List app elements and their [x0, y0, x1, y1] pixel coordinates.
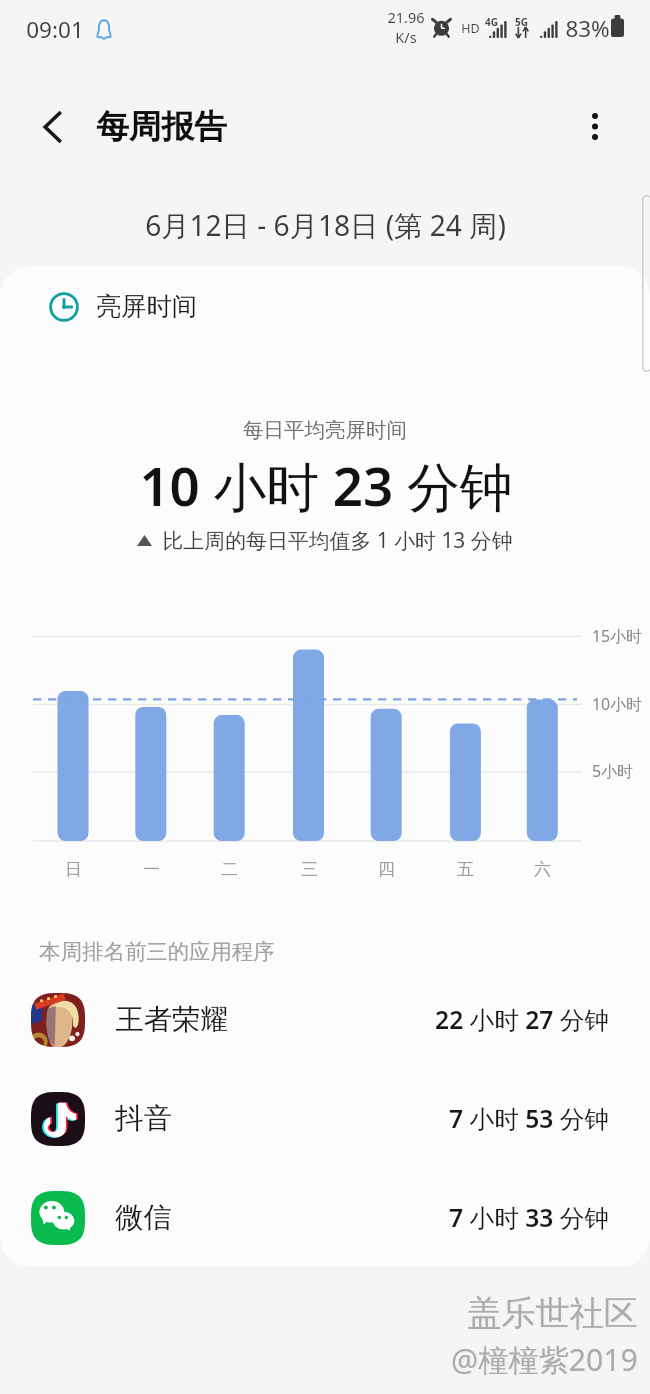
staticText: 7 小时 33 分钟	[449, 1201, 609, 1235]
button[interactable]: More options	[573, 104, 617, 148]
staticText: 09:01	[26, 14, 84, 45]
staticText: 15小时	[592, 625, 642, 647]
staticText: 21.96	[387, 7, 425, 27]
button[interactable]: 抖音	[0, 1070, 650, 1168]
staticText: 10小时	[592, 693, 642, 715]
staticText: 盖乐世社区	[467, 1292, 638, 1335]
staticText: 一	[143, 859, 160, 880]
button[interactable]: 王者荣耀	[0, 971, 650, 1069]
button[interactable]: 亮屏时间	[0, 278, 650, 336]
staticText: 83%	[565, 13, 610, 44]
staticText: 22 小时 27 分钟	[435, 1003, 609, 1037]
staticText: K/s	[395, 27, 417, 47]
staticText: 六	[534, 859, 551, 880]
staticText: 5G	[515, 15, 528, 29]
staticText: 抖音	[115, 1101, 172, 1137]
staticText: 四	[378, 859, 395, 880]
staticText: 微信	[115, 1200, 172, 1236]
staticText: 6月12日 - 6月18日 (第 24 周)	[145, 206, 506, 245]
staticText: 每周报告	[96, 107, 227, 148]
staticText: 三	[301, 859, 318, 880]
staticText: 盖乐世社区	[469, 1293, 640, 1336]
staticText: 5小时	[592, 760, 633, 782]
staticText: HD	[461, 20, 480, 37]
staticText: 4G	[485, 15, 498, 29]
staticText: @橦橦紫2019	[453, 1340, 640, 1381]
staticText: 7 小时 53 分钟	[449, 1102, 609, 1136]
staticText: 亮屏时间	[96, 291, 197, 323]
staticText: 五	[457, 859, 474, 880]
staticText: 二	[221, 859, 238, 880]
staticText: 王者荣耀	[115, 1002, 229, 1038]
staticText: @橦橦紫2019	[451, 1339, 638, 1380]
staticText: 10 小时 23 分钟	[139, 450, 513, 522]
button[interactable]: 微信	[0, 1169, 650, 1267]
staticText: 比上周的每日平均值多 1 小时 13 分钟	[162, 526, 513, 554]
staticText: 本周排名前三的应用程序	[39, 938, 275, 965]
staticText: 每日平均亮屏时间	[243, 417, 407, 443]
button[interactable]: Back	[37, 110, 71, 144]
staticText: 日	[65, 859, 82, 880]
